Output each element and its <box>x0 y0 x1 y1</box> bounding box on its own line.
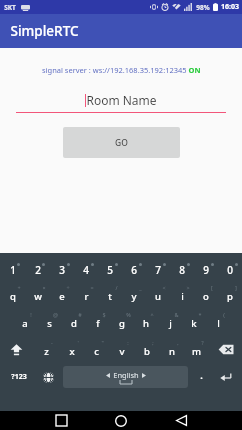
staticText: r <box>84 290 89 303</box>
button[interactable]: ^ <box>134 308 158 335</box>
staticText: b <box>144 345 150 358</box>
button[interactable]: 9 <box>194 255 218 281</box>
button[interactable]: _ <box>122 281 146 308</box>
button[interactable]: English <box>63 366 188 388</box>
staticText: f <box>96 317 100 330</box>
button[interactable]: × <box>25 281 50 308</box>
staticText: 98% <box>196 3 210 12</box>
button[interactable]: = <box>74 281 98 308</box>
staticText: = <box>90 284 94 291</box>
staticText: g <box>119 317 125 330</box>
staticText: ^ <box>150 311 154 318</box>
button[interactable]: . <box>190 363 212 391</box>
button[interactable]: Change language <box>35 363 61 391</box>
button[interactable]: ? <box>184 335 209 363</box>
button[interactable]: Shift <box>0 335 33 363</box>
button[interactable]: Recents <box>48 411 74 430</box>
button[interactable]: < <box>146 281 170 308</box>
staticText: < <box>162 284 166 291</box>
staticText: z <box>44 345 49 358</box>
button[interactable]: ! <box>12 308 37 335</box>
staticText: & <box>174 311 179 318</box>
staticText: t <box>108 290 112 303</box>
staticText: 7 <box>155 263 161 277</box>
staticText: / <box>115 284 118 291</box>
staticText: ; <box>152 339 154 346</box>
staticText: 3 <box>59 263 65 277</box>
staticText: . <box>200 369 203 381</box>
staticText: GO <box>115 137 128 149</box>
staticText: s <box>47 317 52 330</box>
button[interactable]: ] <box>218 281 242 308</box>
staticText: 0 <box>227 263 233 277</box>
button[interactable]: Home <box>108 411 134 430</box>
staticText: ?123 <box>11 372 27 382</box>
staticText: " <box>101 339 104 346</box>
button[interactable]: ' <box>59 335 84 363</box>
staticText: 9 <box>203 263 209 277</box>
button[interactable]: 7 <box>146 255 170 281</box>
staticText: q <box>10 290 16 303</box>
button[interactable]: % <box>110 308 134 335</box>
button[interactable]: $ <box>86 308 110 335</box>
staticText: ÷ <box>66 284 70 291</box>
button[interactable]: & <box>158 308 182 335</box>
button[interactable]: 4 <box>74 255 98 281</box>
staticText: 8 <box>179 263 185 277</box>
button[interactable]: 5 <box>98 255 122 281</box>
button[interactable]: / <box>98 281 122 308</box>
staticText: _ <box>139 284 142 291</box>
staticText: English <box>113 370 139 380</box>
button[interactable]: > <box>170 281 194 308</box>
staticText: m <box>192 345 201 358</box>
button[interactable]: 8 <box>170 255 194 281</box>
button[interactable]: # <box>62 308 86 335</box>
staticText: * <box>198 311 202 318</box>
staticText: % <box>126 311 131 318</box>
button[interactable]: [ <box>194 281 218 308</box>
button[interactable]: GO <box>63 127 180 158</box>
button[interactable]: : <box>109 335 134 363</box>
button[interactable]: 3 <box>50 255 74 281</box>
staticText: ( <box>223 311 225 318</box>
button[interactable]: ( <box>206 308 230 335</box>
button[interactable]: + <box>0 281 25 308</box>
staticText: d <box>71 317 77 330</box>
staticText: 1 <box>10 263 16 277</box>
staticText: x <box>69 345 75 358</box>
button[interactable]: 0 <box>218 255 242 281</box>
button[interactable]: - <box>33 335 59 363</box>
staticText: y <box>131 290 137 303</box>
button[interactable]: 2 <box>25 255 50 281</box>
button[interactable]: * <box>182 308 206 335</box>
button[interactable]: ; <box>134 335 159 363</box>
staticText: $ <box>102 311 106 318</box>
staticText: o <box>203 290 209 303</box>
button[interactable]: Backspace <box>209 335 242 363</box>
staticText: [ <box>211 284 213 291</box>
button[interactable]: , <box>159 335 184 363</box>
staticText: 4 <box>83 263 89 277</box>
staticText: + <box>17 284 21 291</box>
button[interactable]: 1 <box>0 255 25 281</box>
staticText: SKT <box>4 3 16 12</box>
button[interactable]: 6 <box>122 255 146 281</box>
button[interactable]: @ <box>37 308 62 335</box>
staticText: 2 <box>35 263 41 277</box>
button[interactable]: Back <box>168 411 194 430</box>
staticText: @ <box>53 311 58 318</box>
button[interactable]: ÷ <box>50 281 74 308</box>
button[interactable]: ?123 <box>2 363 35 391</box>
button[interactable]: Enter <box>212 363 240 391</box>
staticText: ? <box>201 339 204 346</box>
staticText: 16:03 <box>221 2 239 12</box>
staticText: × <box>42 284 46 291</box>
staticText: w <box>34 290 42 303</box>
staticText: , <box>177 339 179 346</box>
staticText: l <box>217 317 220 330</box>
staticText: : <box>127 339 129 346</box>
button[interactable]: Room Name <box>16 88 226 112</box>
button[interactable]: " <box>84 335 109 363</box>
staticText: a <box>22 317 28 330</box>
staticText: ' <box>77 339 79 346</box>
